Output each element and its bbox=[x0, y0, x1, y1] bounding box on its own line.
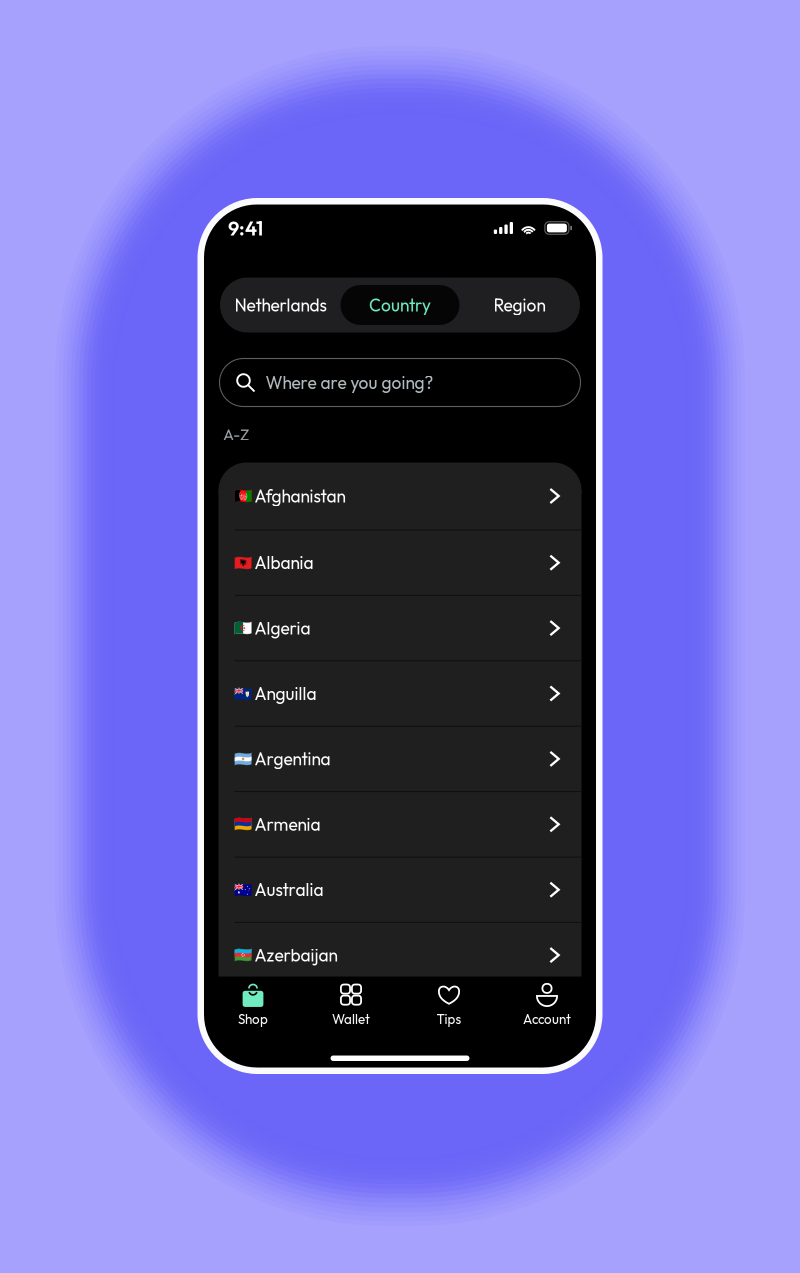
staticText: Tips bbox=[436, 1011, 461, 1027]
staticText: Algeria bbox=[254, 617, 310, 639]
staticText: A-Z bbox=[223, 424, 249, 445]
staticText: 🇦🇱 bbox=[234, 554, 252, 571]
button[interactable]: Where are you going? bbox=[219, 358, 580, 406]
staticText: 🇦🇲 bbox=[234, 816, 252, 833]
button[interactable]: Tips bbox=[400, 981, 498, 1027]
staticText: Region bbox=[493, 294, 545, 316]
button[interactable]: Wallet bbox=[302, 981, 400, 1027]
button[interactable]: 🇦🇷 bbox=[218, 727, 581, 791]
button[interactable]: Region bbox=[459, 285, 579, 325]
button[interactable]: 🇦🇲 bbox=[218, 792, 581, 856]
button[interactable]: Account bbox=[498, 981, 596, 1027]
staticText: Armenia bbox=[254, 813, 320, 835]
button[interactable]: 🇦🇫 bbox=[218, 462, 581, 529]
staticText: Where are you going? bbox=[265, 372, 433, 393]
staticText: 🇩🇿 bbox=[234, 619, 252, 637]
staticText: Azerbaijan bbox=[254, 944, 337, 966]
staticText: 9:41 bbox=[228, 215, 263, 241]
staticText: 🇦🇿 bbox=[234, 946, 252, 964]
staticText: Account bbox=[523, 1011, 571, 1027]
staticText: 🇦🇷 bbox=[234, 750, 252, 767]
staticText: Argentina bbox=[254, 748, 330, 770]
staticText: Afghanistan bbox=[254, 485, 345, 507]
button[interactable]: 🇦🇮 bbox=[218, 661, 581, 726]
button[interactable]: 🇩🇿 bbox=[218, 596, 581, 660]
staticText: 🇦🇺 bbox=[234, 881, 252, 898]
staticText: 🇦🇮 bbox=[234, 685, 252, 702]
staticText: Albania bbox=[254, 552, 313, 574]
button[interactable]: Shop bbox=[204, 981, 302, 1027]
button[interactable]: 🇦🇿 bbox=[218, 923, 581, 987]
button[interactable]: 🇦🇺 bbox=[218, 857, 581, 922]
staticText: Shop bbox=[238, 1011, 268, 1027]
staticText: 🇦🇫 bbox=[234, 487, 252, 505]
button[interactable]: 🇦🇱 bbox=[218, 530, 581, 595]
staticText: Anguilla bbox=[254, 683, 316, 704]
staticText: Wallet bbox=[332, 1011, 370, 1027]
staticText: Australia bbox=[254, 879, 323, 901]
button[interactable]: Netherlands bbox=[220, 285, 340, 325]
staticText: Country bbox=[369, 294, 431, 316]
staticText: Netherlands bbox=[234, 294, 326, 316]
button[interactable]: Country bbox=[340, 285, 459, 325]
